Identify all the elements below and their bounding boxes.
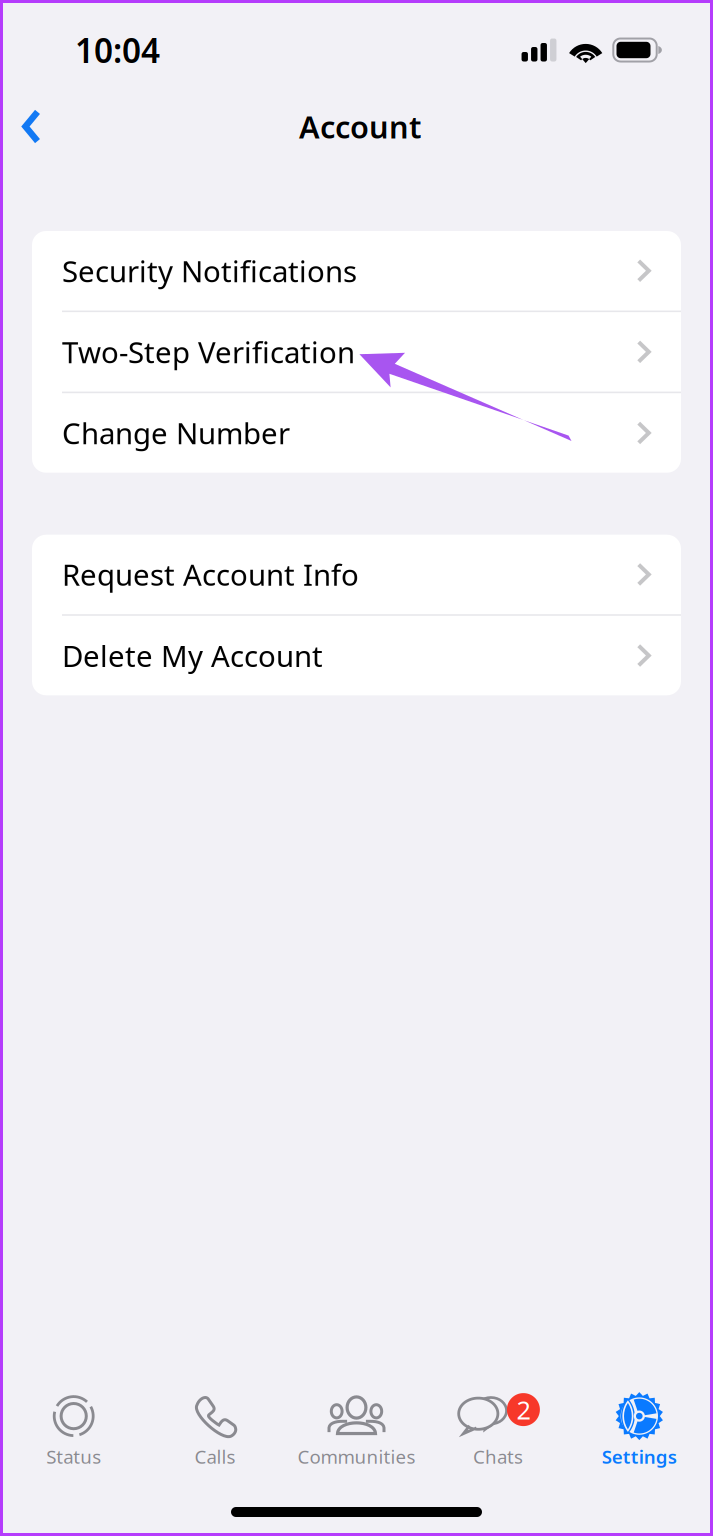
- staticText: Change Number: [62, 413, 290, 452]
- button[interactable]: 2: [427, 1391, 569, 1469]
- staticText: Chats: [473, 1444, 523, 1469]
- button[interactable]: Two-Step Verification: [32, 312, 681, 392]
- staticText: Two-Step Verification: [62, 332, 355, 371]
- staticText: Calls: [195, 1444, 236, 1469]
- button[interactable]: Back: [0, 94, 67, 158]
- button[interactable]: Request Account Info: [32, 535, 681, 614]
- button[interactable]: Communities: [286, 1391, 427, 1469]
- staticText: Settings: [602, 1444, 677, 1469]
- staticText: Communities: [297, 1444, 415, 1469]
- staticText: 2: [516, 1393, 530, 1426]
- staticText: Request Account Info: [62, 555, 359, 594]
- staticText: Delete My Account: [62, 636, 323, 675]
- staticText: Status: [46, 1444, 101, 1469]
- button[interactable]: Delete My Account: [32, 616, 681, 695]
- staticText: Account: [299, 106, 421, 147]
- button[interactable]: Settings: [569, 1391, 710, 1469]
- button[interactable]: Calls: [144, 1391, 286, 1469]
- staticText: 10:04: [75, 28, 160, 72]
- button[interactable]: Status: [3, 1391, 144, 1469]
- button[interactable]: Change Number: [32, 393, 681, 473]
- button[interactable]: Security Notifications: [32, 231, 681, 310]
- staticText: Security Notifications: [62, 251, 357, 290]
